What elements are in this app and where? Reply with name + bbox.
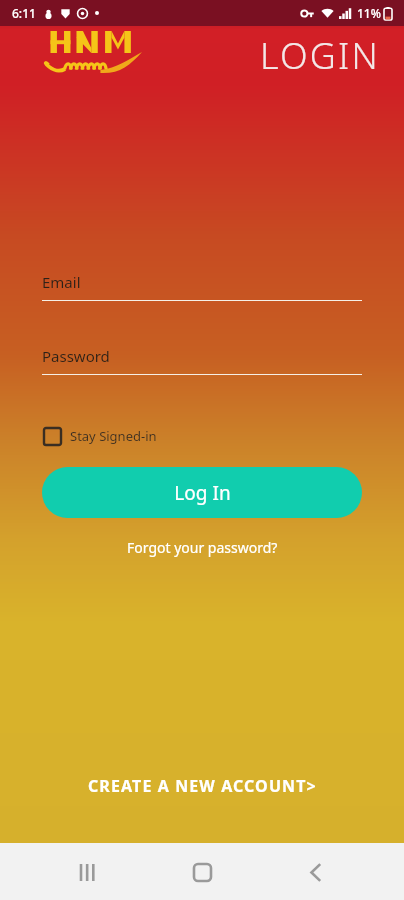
button[interactable]: Recents <box>62 846 114 898</box>
staticText: LOGIN <box>260 31 380 80</box>
staticText: Forgot your password? <box>127 538 278 557</box>
staticText: Email <box>42 272 81 292</box>
button[interactable]: Log In <box>42 467 362 518</box>
staticText: Log In <box>174 480 231 506</box>
button[interactable]: Stay Signed-in <box>42 423 159 449</box>
staticText: Stay Signed-in <box>70 427 157 445</box>
staticText: Password <box>42 346 110 366</box>
button[interactable]: CREATE A NEW ACCOUNT> <box>74 767 331 805</box>
button[interactable]: Home <box>176 846 228 898</box>
button[interactable]: Email <box>42 272 362 301</box>
staticText: 6:11 <box>12 5 36 21</box>
staticText: CREATE A NEW ACCOUNT> <box>88 775 317 797</box>
button[interactable]: Password <box>42 346 362 375</box>
button[interactable]: Forgot your password? <box>117 534 288 561</box>
staticText: 11% <box>357 5 381 21</box>
button[interactable]: Back <box>290 846 342 898</box>
